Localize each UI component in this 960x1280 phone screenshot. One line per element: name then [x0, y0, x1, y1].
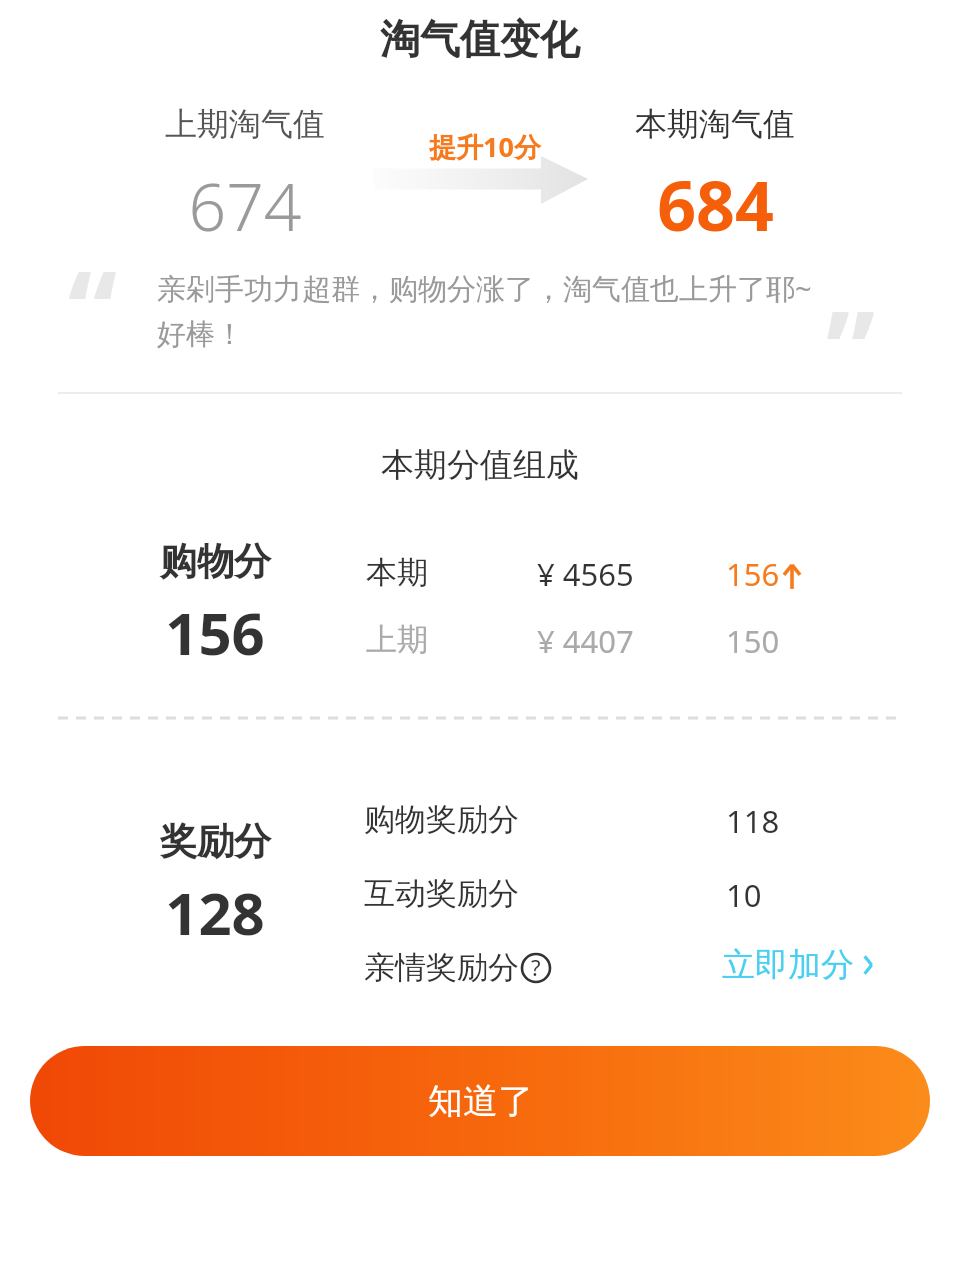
button[interactable]: 帮助说明	[519, 951, 553, 985]
staticText: 上期	[366, 620, 428, 659]
staticText: ”	[826, 272, 875, 422]
staticText: 购物奖励分	[364, 800, 519, 839]
button[interactable]: 知道了	[30, 1046, 930, 1156]
staticText: ?	[531, 952, 541, 982]
staticText: 互动奖励分	[364, 874, 519, 913]
staticText: 本期分值组成	[0, 444, 960, 486]
staticText: ¥ 4407	[537, 620, 634, 662]
staticText: 购物分	[160, 538, 271, 585]
staticText: 674	[188, 160, 302, 250]
button[interactable]: 立即加分	[722, 944, 882, 986]
staticText: 150	[726, 620, 780, 662]
staticText: 128	[165, 873, 265, 952]
staticText: 156	[165, 593, 265, 672]
staticText: 淘气值变化	[0, 14, 960, 64]
staticText: 提升10分	[390, 128, 580, 165]
staticText: 本期	[366, 553, 428, 592]
staticText: “	[68, 232, 117, 382]
staticText: 118	[726, 800, 780, 842]
staticText: 奖励分	[160, 818, 271, 865]
staticText: 亲剁手功力超群，购物分涨了，淘气值也上升了耶~ 好棒！	[157, 268, 857, 352]
staticText: 10	[726, 874, 762, 916]
staticText: 本期淘气值	[635, 104, 795, 144]
staticText: ¥ 4565	[537, 553, 634, 595]
staticText: 立即加分	[722, 944, 854, 986]
staticText: 知道了	[428, 1079, 533, 1123]
staticText: 亲情奖励分	[364, 948, 519, 987]
staticText: 上期淘气值	[165, 104, 325, 144]
staticText: 156	[726, 553, 780, 595]
staticText: 684	[657, 158, 774, 251]
